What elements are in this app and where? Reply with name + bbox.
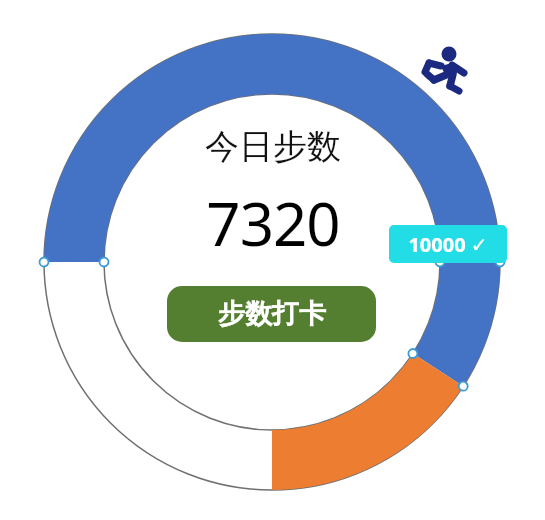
staticText: 10000 ✓ <box>408 231 488 258</box>
other: Running activity <box>408 42 472 106</box>
staticText: 步数打卡 <box>218 297 326 331</box>
staticText: 今日步数 <box>205 125 341 168</box>
button[interactable]: 步数打卡 <box>167 286 376 342</box>
staticText: 7320 <box>206 182 340 264</box>
button[interactable]: 10000 ✓ <box>389 225 507 263</box>
